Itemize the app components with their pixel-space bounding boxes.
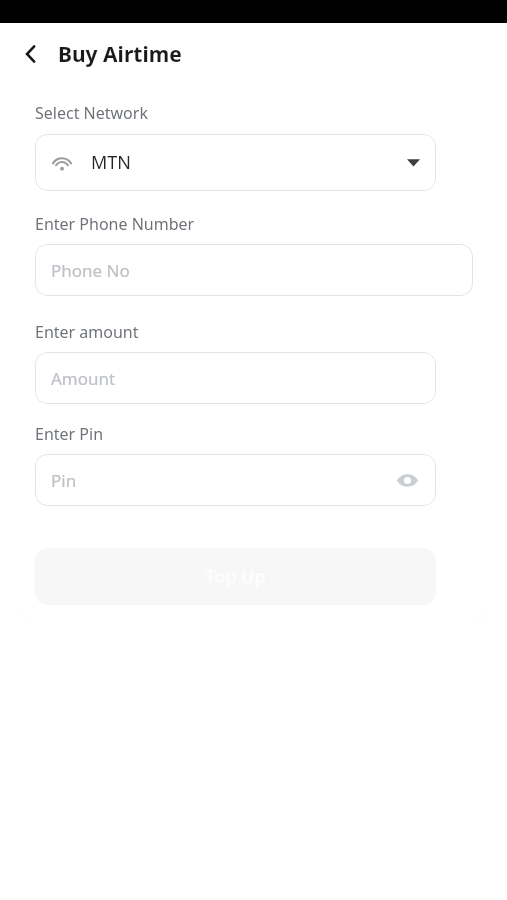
staticText: Phone No	[51, 259, 130, 282]
staticText: Pin	[51, 469, 77, 492]
button[interactable]: Pin	[35, 454, 436, 506]
staticText: Select Network	[35, 102, 148, 124]
staticText: Amount	[51, 367, 116, 390]
staticText: Enter Pin	[35, 423, 104, 445]
button[interactable]: MTN	[35, 134, 436, 191]
button[interactable]: Phone No	[35, 244, 473, 296]
staticText: Enter Phone Number	[35, 213, 195, 235]
button[interactable]: Show PIN	[392, 465, 422, 495]
staticText: Enter amount	[35, 321, 139, 343]
button[interactable]: Amount	[35, 352, 436, 404]
staticText: Buy Airtime	[58, 40, 182, 69]
staticText: MTN	[91, 150, 132, 175]
button[interactable]: Back	[14, 37, 48, 71]
